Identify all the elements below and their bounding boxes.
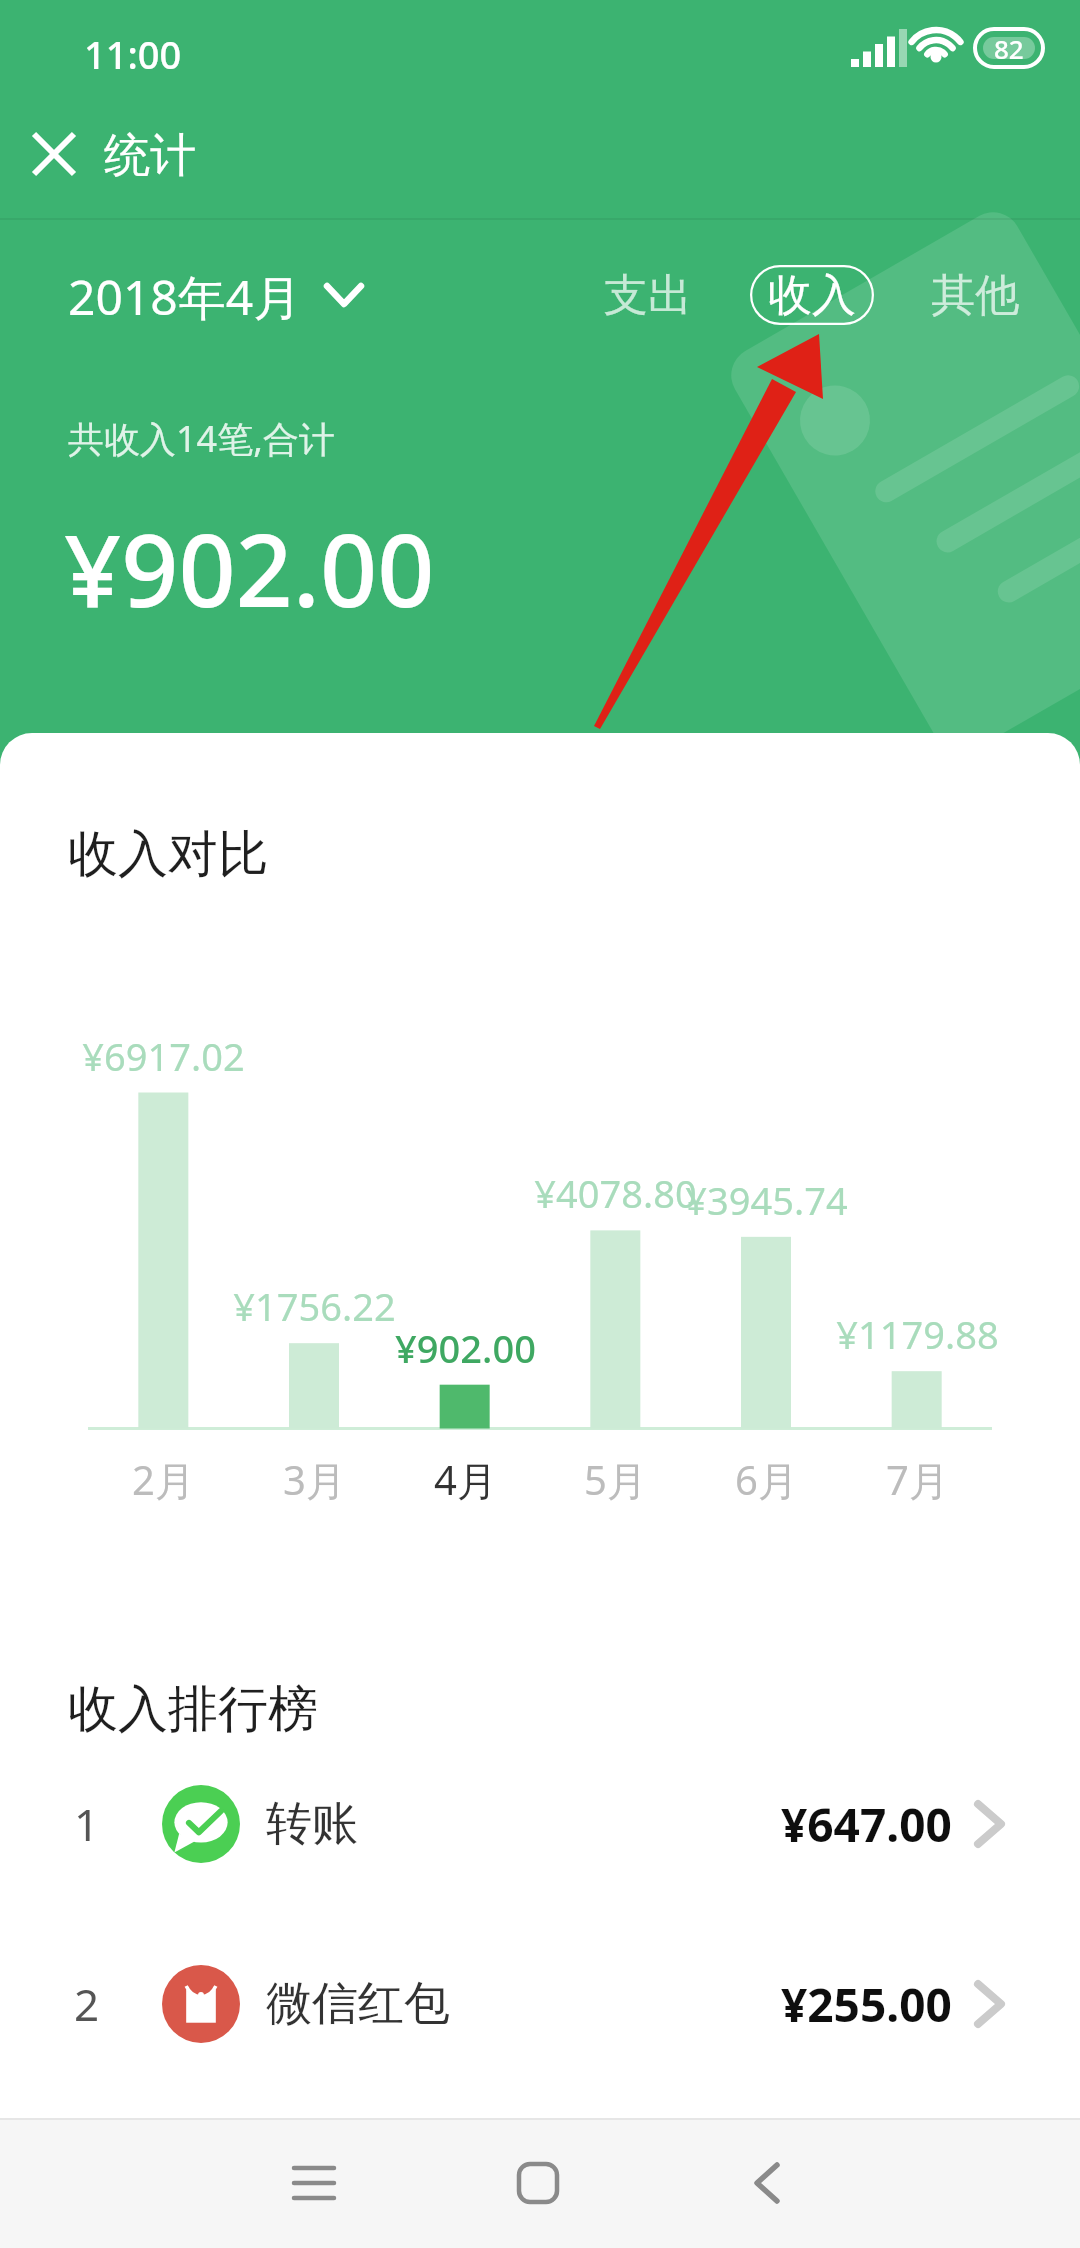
staticText: ¥1756.22 xyxy=(233,1280,396,1332)
staticText: 5月 xyxy=(584,1452,647,1507)
staticText: 2月 xyxy=(132,1452,195,1507)
staticText: 2 xyxy=(74,1974,100,2034)
staticText: 微信红包 xyxy=(266,1975,450,2033)
staticText: 11:00 xyxy=(84,28,182,80)
staticText: ¥647.00 xyxy=(781,1793,952,1856)
button[interactable]: 2018年4月 xyxy=(68,264,364,326)
button[interactable]: Home xyxy=(478,2118,598,2248)
staticText: 共收入14笔,合计 xyxy=(68,414,335,463)
staticText: 82 xyxy=(994,31,1024,66)
staticText: ¥1179.88 xyxy=(836,1308,999,1360)
staticText: 支出 xyxy=(604,268,692,323)
button[interactable]: Close xyxy=(18,118,90,190)
button[interactable]: 收入 xyxy=(750,265,874,325)
staticText: 收入对比 xyxy=(68,823,268,886)
button[interactable]: 1 xyxy=(0,1764,1080,1884)
button[interactable]: 支出 xyxy=(588,263,708,327)
staticText: 3月 xyxy=(283,1452,346,1507)
button[interactable]: 其他 xyxy=(915,263,1035,327)
staticText: ¥255.00 xyxy=(781,1973,952,2036)
staticText: ¥902.00 xyxy=(395,1322,536,1374)
staticText: 其他 xyxy=(931,268,1019,323)
staticText: 收入 xyxy=(768,268,856,323)
staticText: 收入排行榜 xyxy=(68,1678,318,1741)
staticText: 1 xyxy=(74,1794,100,1854)
staticText: 7月 xyxy=(886,1452,949,1507)
staticText: ¥6917.02 xyxy=(82,1030,245,1082)
staticText: 转账 xyxy=(266,1795,358,1853)
staticText: ¥902.00 xyxy=(64,500,435,636)
button[interactable]: Back xyxy=(707,2118,827,2248)
staticText: 统计 xyxy=(104,127,196,185)
staticText: 4月 xyxy=(434,1452,497,1507)
staticText: ¥4078.80 xyxy=(534,1167,697,1219)
staticText: ¥3945.74 xyxy=(685,1174,848,1226)
button[interactable]: 2 xyxy=(0,1944,1080,2064)
staticText: 6月 xyxy=(735,1452,798,1507)
staticText: 2018年4月 xyxy=(68,264,302,326)
button[interactable]: Recent apps xyxy=(254,2118,374,2248)
